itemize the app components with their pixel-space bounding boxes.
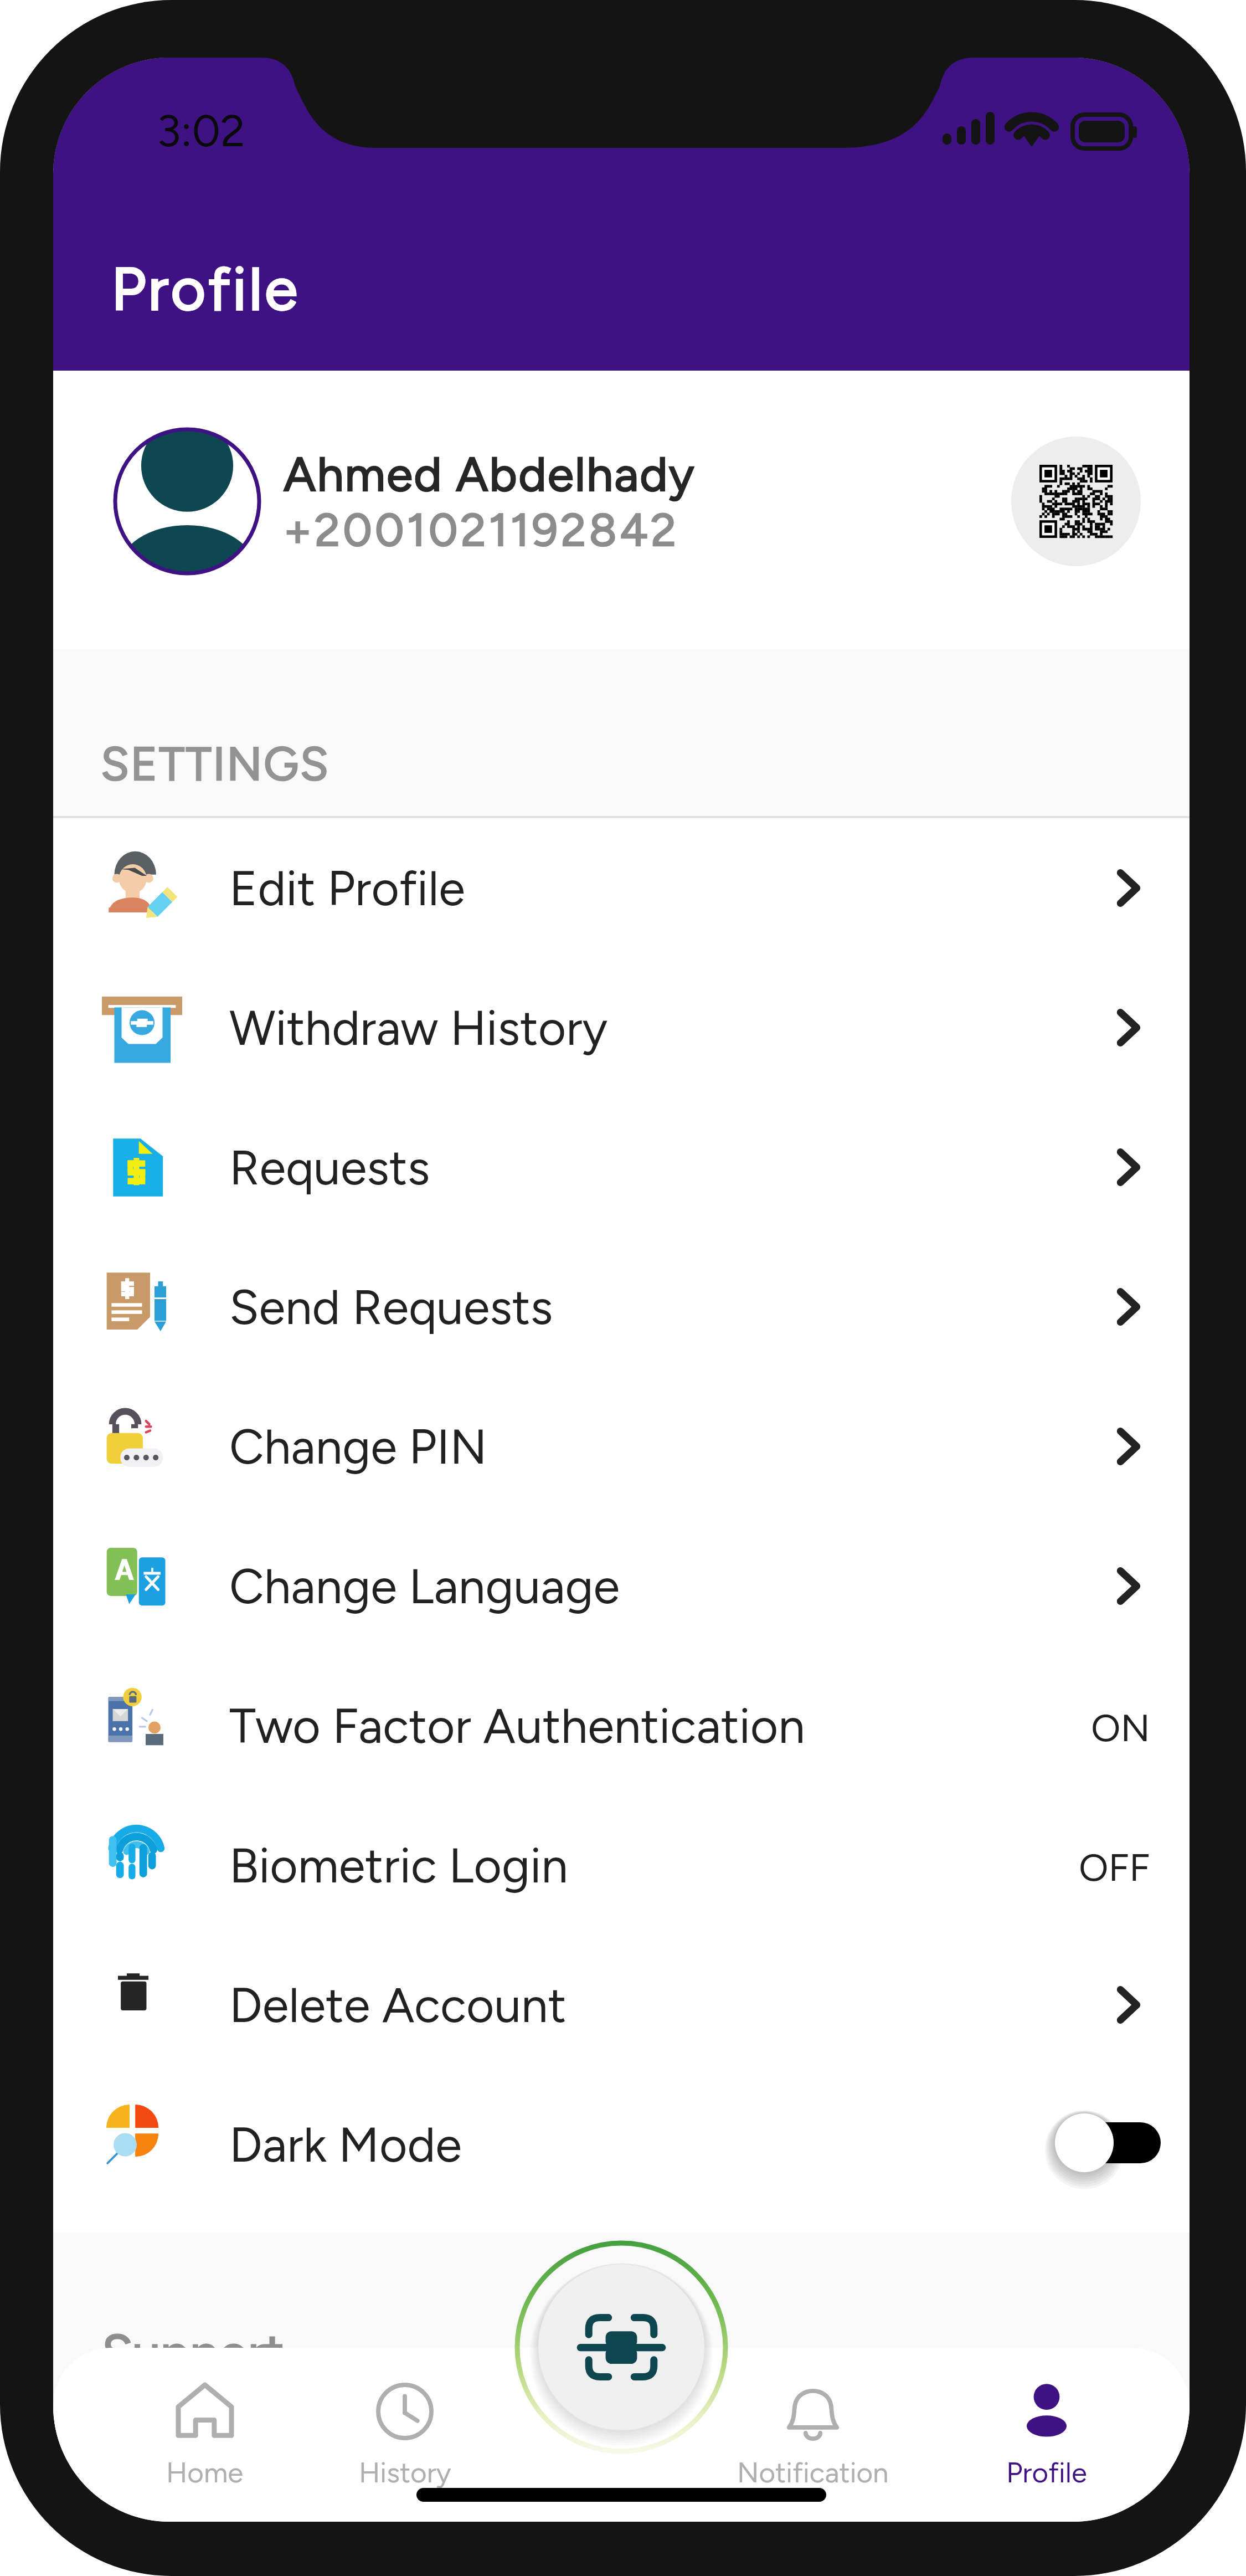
- button[interactable]: Dark Mode: [53, 2075, 1190, 2214]
- staticText: Send Requests: [229, 1278, 1125, 1336]
- staticText: Change PIN: [229, 1418, 1125, 1475]
- staticText: Withdraw History: [229, 999, 1125, 1056]
- staticText: History: [359, 2456, 451, 2490]
- button[interactable]: Withdraw History: [53, 958, 1190, 1097]
- staticText: Profile: [1006, 2456, 1087, 2490]
- button[interactable]: Change PIN: [53, 1377, 1190, 1516]
- button[interactable]: Requests: [53, 1097, 1190, 1237]
- staticText: OFF: [1079, 1844, 1150, 1890]
- staticText: Dark Mode: [229, 2116, 1039, 2173]
- staticText: Delete Account: [229, 1976, 1125, 2034]
- staticText: Support: [102, 2322, 284, 2382]
- staticText: Requests: [229, 1138, 1125, 1196]
- button[interactable]: Send Requests: [53, 1237, 1190, 1377]
- staticText: Edit Profile: [229, 859, 1125, 917]
- button[interactable]: Scan QR code: [538, 2264, 704, 2430]
- button[interactable]: Dark mode toggle: [1050, 2104, 1161, 2182]
- staticText: Notification: [737, 2456, 889, 2490]
- staticText: Profile: [111, 253, 300, 325]
- button[interactable]: Home: [100, 2348, 310, 2522]
- button[interactable]: Show my QR code: [1011, 437, 1141, 566]
- button[interactable]: Delete Account: [53, 1935, 1190, 2075]
- staticText: Home: [166, 2456, 244, 2490]
- staticText: ON: [1091, 1705, 1150, 1751]
- button[interactable]: Change Language: [53, 1516, 1190, 1656]
- button[interactable]: History: [300, 2348, 510, 2522]
- button[interactable]: Two Factor Authentication: [53, 1656, 1190, 1795]
- staticText: 3:02: [157, 104, 245, 157]
- staticText: Ahmed Abdelhady: [284, 445, 696, 502]
- button[interactable]: Profile: [941, 2348, 1152, 2522]
- button[interactable]: Notification: [708, 2348, 918, 2522]
- staticText: +2001021192842: [284, 502, 679, 557]
- staticText: Change Language: [229, 1557, 1125, 1615]
- button[interactable]: Biometric Login: [53, 1795, 1190, 1935]
- staticText: Two Factor Authentication: [229, 1697, 1091, 1754]
- staticText: Biometric Login: [229, 1836, 1079, 1894]
- button[interactable]: Edit Profile: [53, 818, 1190, 958]
- staticText: SETTINGS: [101, 736, 330, 792]
